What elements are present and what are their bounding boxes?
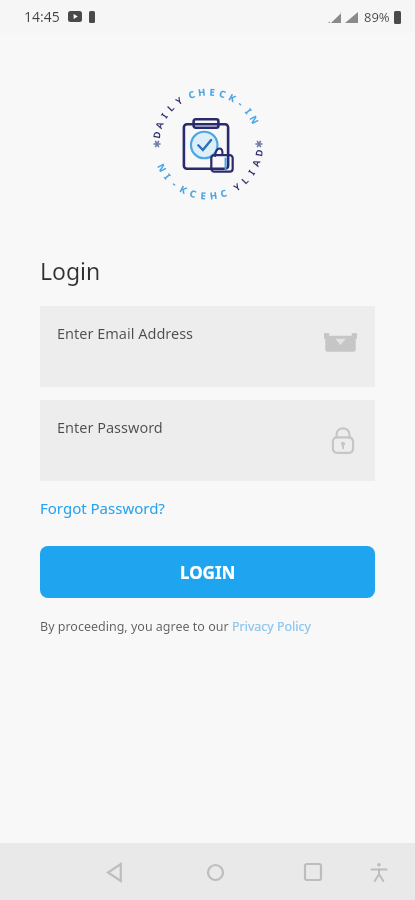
staticText: Privacy Policy <box>232 618 311 635</box>
staticText: LOGIN <box>180 561 236 584</box>
staticText: By proceeding, you agree to our <box>40 618 232 635</box>
other: Password <box>329 424 357 456</box>
staticText: Login <box>40 255 101 286</box>
staticText: Enter Email Address <box>57 323 194 343</box>
button[interactable]: Recent apps <box>289 848 337 896</box>
staticText: Forgot Password? <box>40 498 165 518</box>
button[interactable]: Enter Email Address <box>40 306 375 387</box>
button[interactable]: Accessibility <box>359 852 399 892</box>
button[interactable]: Enter Password <box>40 400 375 481</box>
staticText: 14:45 <box>24 7 60 26</box>
other: Email <box>324 330 357 356</box>
staticText: Enter Password <box>57 417 163 437</box>
button[interactable]: Forgot Password? <box>40 498 165 518</box>
button[interactable]: Back <box>92 848 140 896</box>
button[interactable]: LOGIN <box>40 546 375 598</box>
staticText: 89% <box>364 8 390 26</box>
button[interactable]: Home <box>191 848 239 896</box>
button[interactable]: Privacy Policy <box>232 618 311 635</box>
